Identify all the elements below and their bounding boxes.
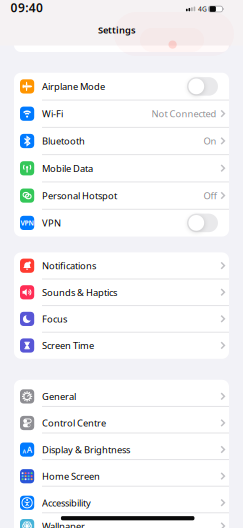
staticText: Off (204, 189, 217, 202)
staticText: Bluetooth (42, 135, 85, 147)
staticText: Accessibility (42, 497, 91, 509)
staticText: VPN (42, 217, 61, 229)
staticText: Control Centre (42, 417, 106, 429)
staticText: 4G (198, 4, 207, 13)
button[interactable]: General (14, 383, 229, 410)
button[interactable]: Screen Time (14, 332, 229, 359)
staticText: 09:40 (10, 0, 43, 16)
button[interactable]: A (14, 436, 229, 463)
button[interactable]: VPN (14, 209, 229, 236)
staticText: Personal Hotspot (42, 189, 117, 202)
staticText: A (27, 444, 32, 455)
button[interactable]: Accessibility (14, 489, 229, 516)
staticText: Screen Time (42, 339, 94, 352)
button[interactable]: Control Centre (14, 410, 229, 436)
button[interactable]: Focus (14, 306, 229, 332)
button[interactable]: Home Screen (14, 463, 229, 489)
button[interactable]: Sounds & Haptics (14, 279, 229, 306)
staticText: General (42, 390, 76, 403)
staticText: Wallpaper (42, 520, 85, 528)
staticText: A (22, 448, 26, 455)
staticText: Wi-Fi (42, 107, 63, 120)
staticText: On (204, 135, 217, 147)
button[interactable]: Mobile Data (14, 155, 229, 182)
staticText: VPN (21, 218, 34, 227)
staticText: Sounds & Haptics (42, 286, 117, 298)
staticText: Settings (98, 24, 136, 36)
staticText: Airplane Mode (42, 80, 105, 93)
staticText: Notifications (42, 259, 96, 272)
staticText: Mobile Data (42, 162, 93, 174)
button[interactable]: Personal Hotspot (14, 182, 229, 209)
staticText: Display & Brightness (42, 443, 130, 456)
button[interactable]: Notifications (14, 252, 229, 279)
staticText: Home Screen (42, 470, 100, 482)
button[interactable]: Wi-Fi (14, 100, 229, 127)
button[interactable]: Airplane Mode (14, 73, 229, 100)
staticText: Focus (42, 313, 67, 325)
button[interactable]: Bluetooth (14, 127, 229, 155)
button[interactable]: Wallpaper (14, 516, 229, 528)
staticText: Not Connected (152, 107, 217, 120)
